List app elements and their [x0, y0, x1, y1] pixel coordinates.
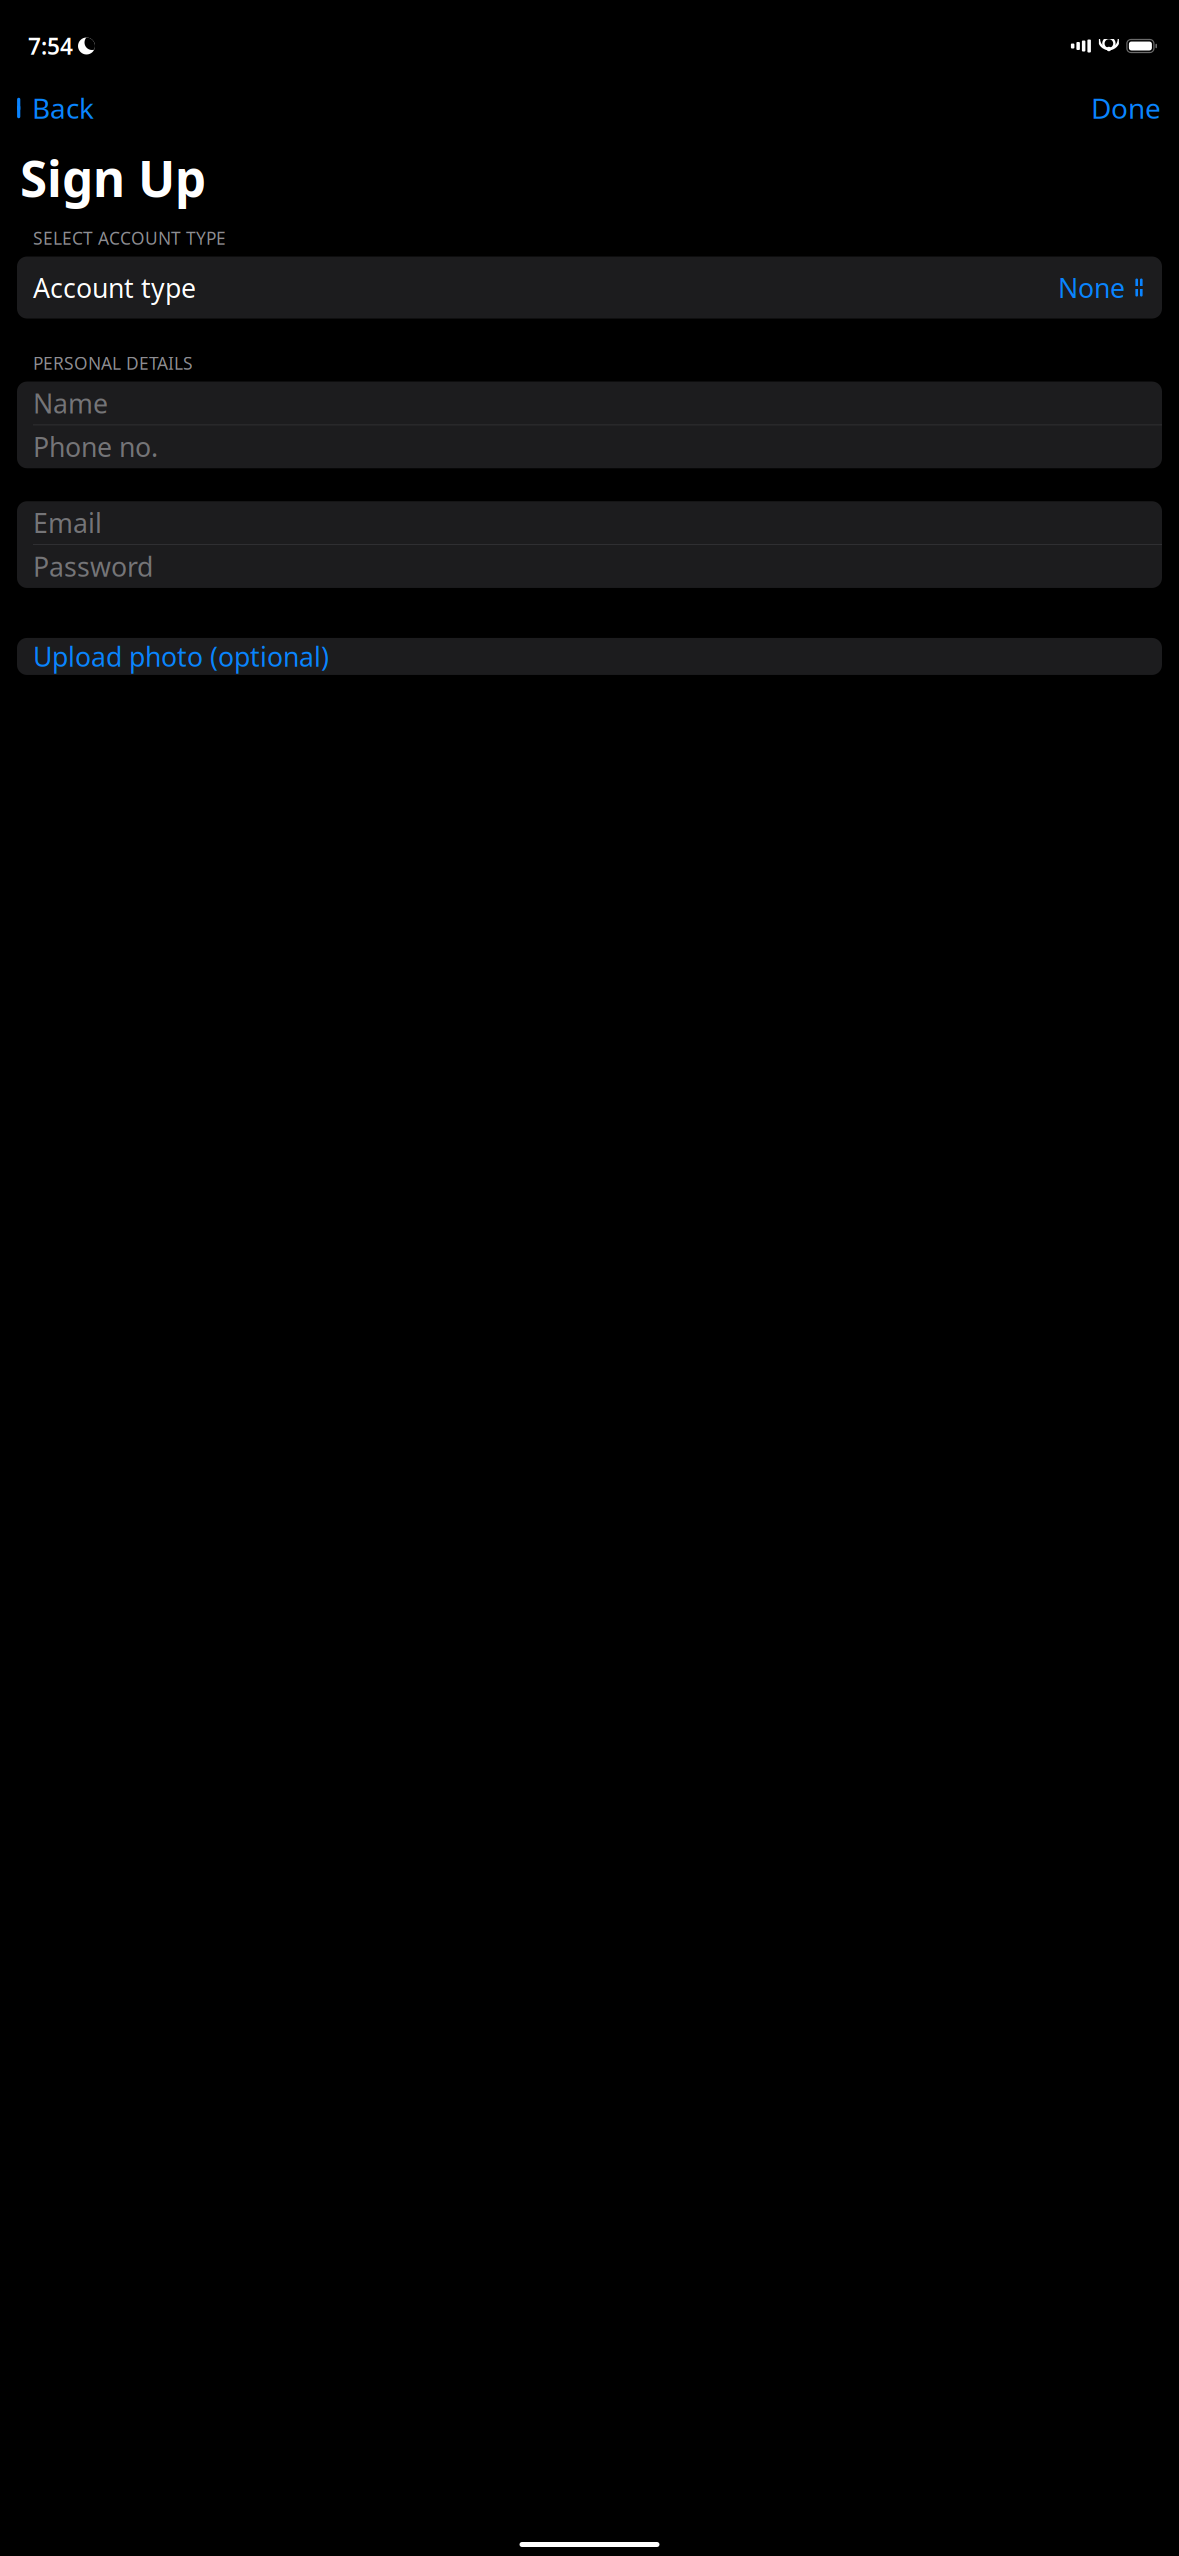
- staticText: Upload photo (optional): [33, 639, 329, 674]
- staticText: Name: [33, 385, 108, 421]
- staticText: Sign Up: [20, 145, 206, 210]
- button[interactable]: Back: [8, 81, 104, 135]
- staticText: PERSONAL DETAILS: [33, 351, 193, 374]
- button[interactable]: Phone no.: [17, 425, 1162, 468]
- staticText: Phone no.: [33, 429, 158, 464]
- button[interactable]: Account type: [17, 256, 1162, 318]
- button[interactable]: Email: [17, 501, 1162, 544]
- button[interactable]: Done: [1081, 81, 1171, 135]
- staticText: None: [1058, 270, 1125, 305]
- staticText: Email: [33, 505, 102, 540]
- button[interactable]: Upload photo (optional): [17, 638, 1162, 675]
- staticText: Account type: [33, 270, 196, 305]
- button[interactable]: Password: [17, 545, 1162, 588]
- staticText: Password: [33, 549, 153, 584]
- staticText: SELECT ACCOUNT TYPE: [33, 226, 226, 249]
- staticText: Back: [32, 89, 94, 127]
- staticText: 7:54: [28, 31, 73, 61]
- button[interactable]: Name: [17, 381, 1162, 424]
- staticText: Done: [1091, 89, 1161, 127]
